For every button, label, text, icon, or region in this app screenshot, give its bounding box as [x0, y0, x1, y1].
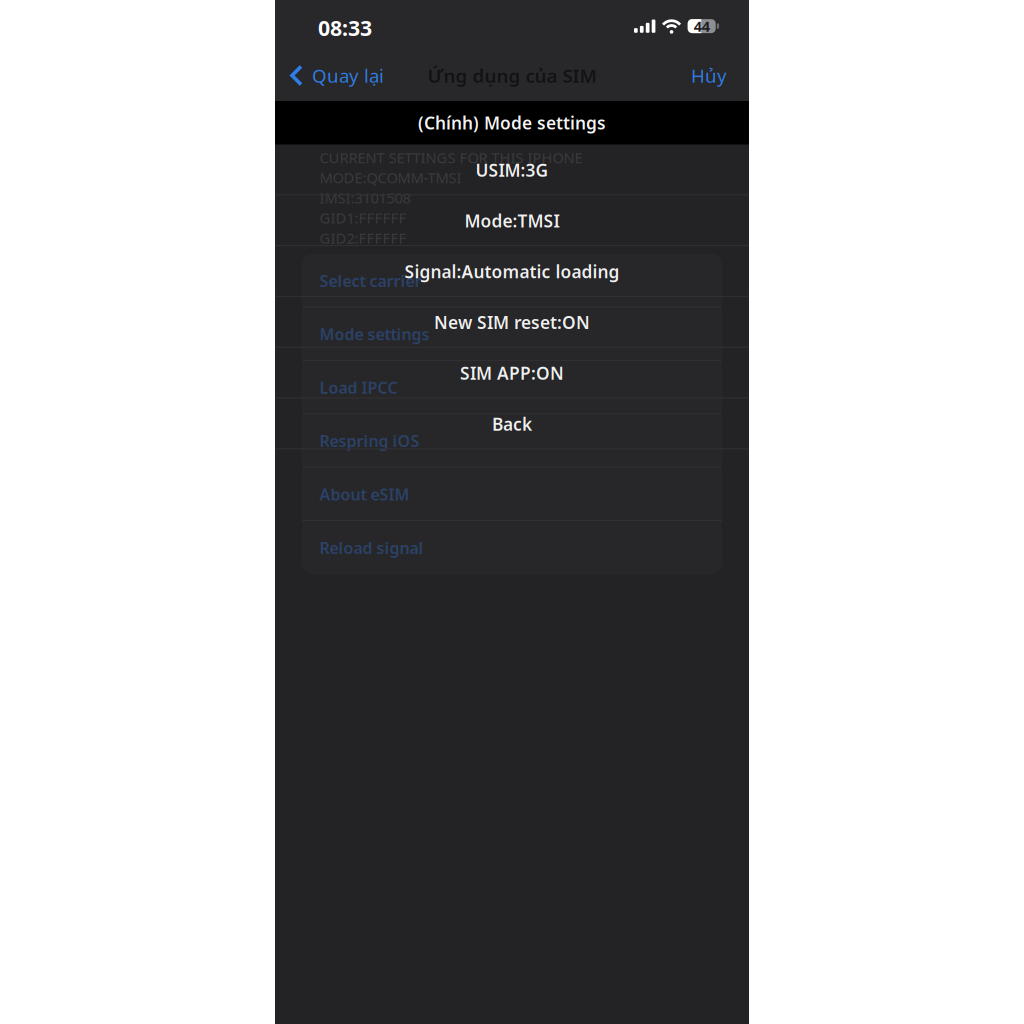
button[interactable]: Hủy [667, 50, 727, 101]
button[interactable]: About eSIM [302, 468, 722, 521]
staticText: Select carrier [319, 270, 421, 291]
button[interactable]: Back [290, 50, 384, 101]
button[interactable]: Respring iOS [302, 414, 722, 468]
staticText: 08:33 [318, 13, 372, 42]
staticText: Quay lại [312, 63, 384, 88]
button[interactable]: Signal:Automatic loading [275, 246, 749, 297]
staticText: USIM:3G [475, 158, 548, 181]
staticText: SIM APP:ON [460, 362, 564, 385]
staticText: IMSI:3101508 [319, 188, 410, 207]
staticText: Signal:Automatic loading [404, 260, 619, 283]
staticText: Load IPCC [319, 377, 397, 398]
button[interactable]: Mode settings [302, 307, 722, 361]
staticText: Reload signal [319, 537, 423, 558]
staticText: GID2:FFFFFF [319, 228, 406, 248]
button[interactable]: Load IPCC [302, 361, 722, 414]
staticText: MODE:QCOMM-TMSI [319, 168, 461, 187]
staticText: Mode:TMSI [464, 209, 559, 232]
staticText: Ứng dụng của SIM [427, 63, 596, 88]
staticText: Mode settings [319, 323, 429, 345]
button[interactable]: New SIM reset:ON [275, 297, 749, 348]
button[interactable]: Mode:TMSI [275, 195, 749, 246]
staticText: Hủy [691, 63, 727, 88]
staticText: New SIM reset:ON [434, 311, 590, 334]
staticText: 44 [694, 16, 710, 36]
button[interactable]: Reload signal [302, 521, 722, 574]
staticText: GID1:FFFFFF [319, 208, 406, 228]
staticText: Respring iOS [319, 430, 419, 451]
staticText: CURRENT SETTINGS FOR THIS IPHONE [319, 148, 582, 167]
button[interactable]: Back [275, 398, 749, 449]
staticText: (Chính) Mode settings [418, 111, 606, 134]
button[interactable]: USIM:3G [275, 144, 749, 195]
staticText: Back [492, 412, 532, 435]
button[interactable]: SIM APP:ON [275, 348, 749, 398]
button[interactable]: Select carrier [302, 254, 722, 307]
staticText: About eSIM [319, 484, 409, 505]
